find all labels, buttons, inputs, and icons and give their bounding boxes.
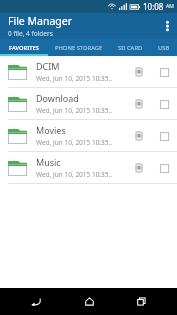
staticText: Download xyxy=(36,92,79,104)
button[interactable]: Select DCIM xyxy=(155,63,173,81)
button[interactable]: SD CARD xyxy=(110,39,150,56)
staticText: AM xyxy=(166,3,174,10)
staticText: Wed, Jun 10, 2015 10:35.. xyxy=(36,106,113,115)
staticText: SD CARD xyxy=(118,44,143,52)
staticText: Wed, Jun 10, 2015 10:35.. xyxy=(36,170,113,179)
button[interactable]: Select Music xyxy=(155,159,173,177)
button[interactable]: Internal storage xyxy=(131,160,147,176)
staticText: DCIM xyxy=(36,60,60,72)
button[interactable]: Select Movies xyxy=(155,127,173,145)
button[interactable]: More options xyxy=(157,13,177,39)
button[interactable]: Download xyxy=(0,88,177,119)
staticText: FAVORITES xyxy=(9,44,39,52)
button[interactable]: Internal storage xyxy=(131,96,147,112)
staticText: Wed, Jun 10, 2015 10:35.. xyxy=(36,74,113,83)
staticText: Music xyxy=(36,156,61,168)
button[interactable]: Recent apps xyxy=(124,288,158,315)
button[interactable]: Home xyxy=(72,288,106,315)
staticText: Movies xyxy=(36,124,66,136)
button[interactable]: DCIM xyxy=(0,56,177,87)
staticText: PHONE STORAGE xyxy=(55,44,103,52)
button[interactable]: Internal storage xyxy=(131,64,147,80)
staticText: File Manager xyxy=(8,14,73,28)
button[interactable]: Internal storage xyxy=(131,128,147,144)
staticText: 10:08 xyxy=(143,1,164,12)
staticText: 0 file, 4 folders xyxy=(8,29,53,38)
button[interactable]: FAVORITES xyxy=(0,39,48,56)
staticText: USB xyxy=(158,44,170,52)
button[interactable]: PHONE STORAGE xyxy=(48,39,110,56)
button[interactable]: Select Download xyxy=(155,95,173,113)
button[interactable]: Back xyxy=(19,288,53,315)
staticText: Wed, Jun 10, 2015 10:35.. xyxy=(36,138,113,147)
button[interactable]: Music xyxy=(0,152,177,183)
button[interactable]: Movies xyxy=(0,120,177,151)
button[interactable]: USB xyxy=(150,39,177,56)
